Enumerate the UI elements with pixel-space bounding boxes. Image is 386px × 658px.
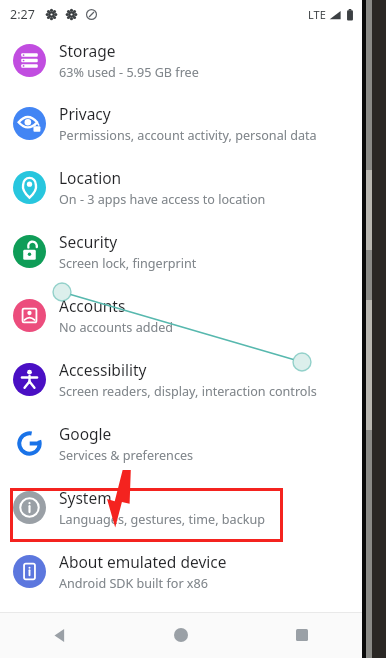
staticText: Google	[59, 423, 112, 444]
button[interactable]: Recent apps	[241, 612, 362, 658]
staticText: Languages, gestures, time, backup	[59, 511, 265, 528]
button[interactable]: Location	[0, 155, 362, 219]
staticText: Security	[59, 231, 118, 252]
button[interactable]: Accessibility	[0, 347, 362, 411]
button[interactable]: Google	[0, 411, 362, 475]
staticText: Android SDK built for x86	[59, 575, 208, 592]
button[interactable]: Accounts	[0, 283, 362, 347]
button[interactable]: Privacy	[0, 91, 362, 155]
staticText: On - 3 apps have access to location	[59, 191, 266, 208]
button[interactable]: System	[0, 475, 362, 539]
staticText: Screen readers, display, interaction con…	[59, 383, 317, 400]
staticText: System	[59, 487, 112, 508]
button[interactable]: Home	[120, 612, 241, 658]
staticText: About emulated device	[59, 551, 227, 572]
staticText: Storage	[59, 40, 116, 61]
staticText: 2:27	[10, 6, 35, 23]
staticText: No accounts added	[59, 319, 174, 336]
staticText: LTE	[308, 7, 326, 22]
button[interactable]: Security	[0, 219, 362, 283]
button[interactable]: Back	[0, 612, 120, 658]
staticText: Privacy	[59, 103, 111, 124]
staticText: Screen lock, fingerprint	[59, 255, 197, 272]
staticText: Accessibility	[59, 359, 147, 380]
staticText: Services & preferences	[59, 447, 194, 464]
staticText: Permissions, account activity, personal …	[59, 127, 317, 144]
staticText: 63% used - 5.95 GB free	[59, 64, 199, 81]
button[interactable]: Storage	[0, 29, 362, 91]
button[interactable]: About emulated device	[0, 539, 362, 603]
staticText: Location	[59, 167, 122, 188]
staticText: Accounts	[59, 295, 126, 316]
